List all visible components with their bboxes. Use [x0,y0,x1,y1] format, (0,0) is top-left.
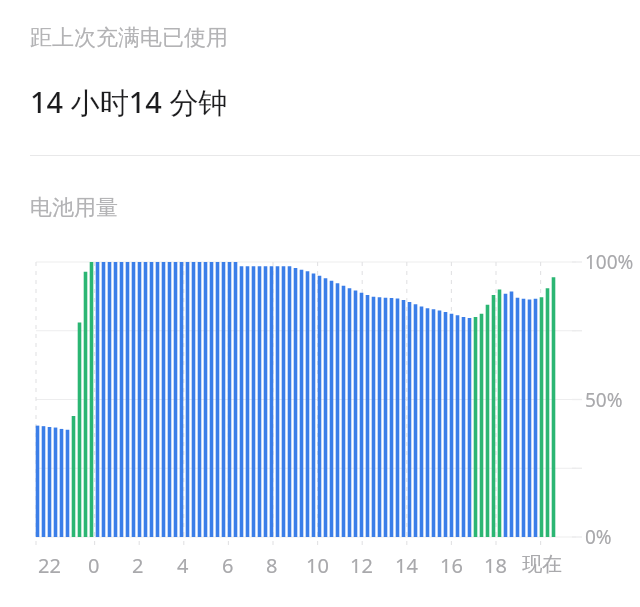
staticText: 距上次充满电已使用 [30,24,228,52]
staticText: 18 [484,552,507,579]
staticText: 4 [177,552,189,579]
staticText: 10 [306,552,329,579]
staticText: 100% [585,249,634,275]
staticText: 16 [440,552,463,579]
staticText: 现在 [522,552,562,577]
staticText: 2 [132,552,144,579]
staticText: 14 [395,552,418,579]
staticText: 14 小时14 分钟 [30,82,228,122]
button[interactable]: 电池用量图表 [0,156,640,607]
staticText: 50% [585,387,623,413]
staticText: 12 [350,552,373,579]
staticText: 6 [222,552,234,579]
staticText: 22 [38,552,61,579]
staticText: 电池用量 [30,194,118,222]
staticText: 0 [88,552,100,579]
staticText: 0% [585,524,612,550]
staticText: 8 [266,552,278,579]
button[interactable]: 距上次充满电已使用 [0,0,640,155]
